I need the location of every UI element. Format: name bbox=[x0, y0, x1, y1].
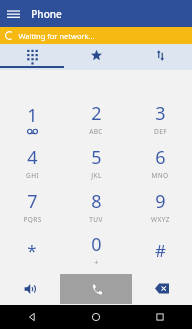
staticText: MNO bbox=[151, 171, 169, 180]
staticText: 7 bbox=[27, 189, 38, 214]
staticText: ABC bbox=[89, 127, 103, 136]
staticText: Phone bbox=[31, 7, 62, 21]
staticText: 0 bbox=[91, 232, 102, 257]
staticText: 3 bbox=[155, 101, 166, 126]
staticText: 5 bbox=[91, 145, 102, 170]
button[interactable]: 0 bbox=[64, 228, 128, 272]
staticText: Waiting for network... bbox=[18, 31, 95, 41]
staticText: 1 bbox=[27, 103, 38, 128]
staticText: TUV bbox=[89, 215, 103, 224]
staticText: 8 bbox=[91, 189, 102, 214]
staticText: # bbox=[155, 239, 166, 262]
button[interactable]: Call bbox=[60, 272, 132, 305]
button[interactable]: 2 bbox=[64, 96, 128, 140]
button[interactable]: 3 bbox=[128, 96, 192, 140]
button[interactable]: 8 bbox=[64, 184, 128, 228]
button[interactable]: 7 bbox=[0, 184, 64, 228]
staticText: JKL bbox=[91, 171, 102, 180]
staticText: * bbox=[27, 239, 37, 262]
button[interactable]: # bbox=[128, 228, 192, 272]
staticText: 6 bbox=[155, 145, 166, 170]
button[interactable]: Favorites bbox=[64, 44, 128, 66]
button[interactable]: 6 bbox=[128, 140, 192, 184]
button[interactable]: Menu bbox=[0, 0, 27, 27]
button[interactable]: Dialpad bbox=[0, 44, 64, 66]
staticText: + bbox=[94, 258, 99, 268]
button[interactable]: Backspace bbox=[132, 272, 192, 305]
button[interactable]: Recents bbox=[128, 305, 192, 329]
staticText: WXYZ bbox=[151, 215, 170, 224]
button[interactable]: Back bbox=[0, 305, 64, 329]
staticText: 4 bbox=[27, 145, 38, 170]
button[interactable]: 5 bbox=[64, 140, 128, 184]
button[interactable]: 4 bbox=[0, 140, 64, 184]
button[interactable]: * bbox=[0, 228, 64, 272]
button[interactable]: Home bbox=[64, 305, 128, 329]
button[interactable]: Speaker bbox=[0, 272, 60, 305]
button[interactable]: Call history bbox=[128, 44, 192, 66]
staticText: DEF bbox=[154, 127, 167, 136]
staticText: PQRS bbox=[23, 215, 42, 224]
staticText: GHI bbox=[26, 171, 39, 180]
staticText: 9 bbox=[155, 189, 166, 214]
button[interactable]: 9 bbox=[128, 184, 192, 228]
staticText: 2 bbox=[91, 101, 102, 126]
button[interactable]: 1 bbox=[0, 96, 64, 140]
